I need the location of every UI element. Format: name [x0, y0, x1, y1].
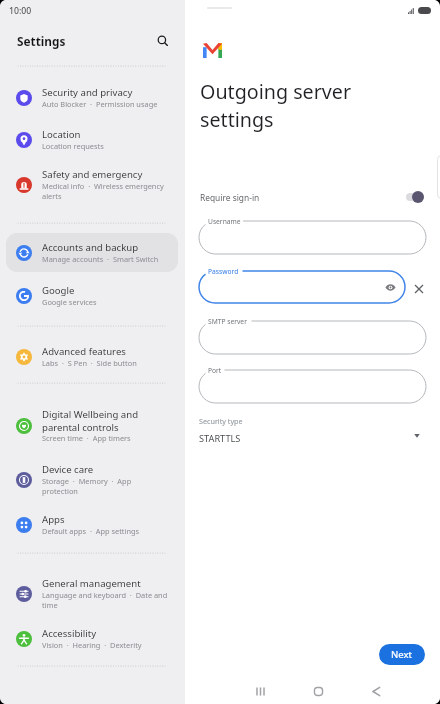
staticText: Password [208, 267, 239, 276]
button[interactable]: Home [307, 680, 329, 702]
staticText: Default apps · App settings [42, 526, 140, 536]
staticText: Device care [42, 463, 94, 476]
staticText: Digital Wellbeing and parental controls [42, 408, 169, 433]
button[interactable]: Google [6, 276, 178, 315]
staticText: Google services [42, 297, 97, 307]
staticText: Safety and emergency [42, 168, 143, 181]
staticText: Require sign-in [200, 192, 260, 203]
staticText: Google [42, 284, 75, 297]
staticText: Screen time · App timers [42, 433, 131, 443]
staticText: Labs · S Pen · Side button [42, 358, 137, 368]
staticText: Accessibility [42, 627, 97, 640]
button[interactable]: Clear [411, 281, 427, 297]
button[interactable]: Safety and emergency [6, 165, 178, 204]
button[interactable]: Search [152, 30, 174, 52]
staticText: Accounts and backup [42, 241, 139, 254]
staticText: Username [208, 217, 241, 226]
button[interactable]: Security type [185, 412, 440, 448]
staticText: Security type [199, 416, 243, 426]
staticText: Outgoing server settings [200, 78, 352, 133]
button[interactable]: Apps [6, 505, 178, 544]
button[interactable]: Location [6, 120, 178, 159]
button[interactable]: Security and privacy [6, 78, 178, 117]
staticText: Vision · Hearing · Dexterity [42, 640, 142, 650]
staticText: SMTP server [208, 317, 247, 326]
staticText: Storage · Memory · App protection [42, 476, 169, 496]
button[interactable]: Accounts and backup [6, 233, 178, 272]
button[interactable]: Next [379, 644, 425, 665]
button[interactable]: General management [6, 574, 178, 613]
button[interactable]: Require sign-in [185, 186, 440, 208]
button[interactable]: Port [199, 370, 426, 403]
button[interactable]: SMTP server [199, 321, 426, 354]
staticText: General management [42, 577, 141, 590]
staticText: Apps [42, 513, 65, 526]
staticText: Location requests [42, 141, 104, 151]
staticText: Location [42, 128, 81, 141]
button[interactable]: Back [365, 680, 387, 702]
button[interactable]: Password [199, 271, 405, 303]
staticText: Settings [17, 33, 66, 49]
button[interactable]: Username [199, 221, 426, 254]
staticText: 10:00 [9, 5, 32, 17]
button[interactable]: Device care [6, 460, 178, 499]
staticText: Auto Blocker · Permission usage [42, 99, 158, 109]
staticText: Port [208, 366, 222, 375]
button[interactable]: Digital Wellbeing and parental controls [6, 406, 178, 445]
staticText: Medical info · Wireless emergency alerts [42, 181, 169, 201]
staticText: Advanced features [42, 345, 126, 358]
button[interactable]: Accessibility [6, 619, 178, 658]
button[interactable]: Recents [249, 680, 271, 702]
staticText: Manage accounts · Smart Switch [42, 254, 159, 264]
staticText: Next [391, 648, 413, 661]
button[interactable]: Show password [384, 281, 397, 294]
button[interactable]: Advanced features [6, 337, 178, 376]
staticText: STARTTLS [199, 432, 241, 445]
staticText: Language and keyboard · Date and time [42, 590, 169, 610]
staticText: Security and privacy [42, 86, 133, 99]
